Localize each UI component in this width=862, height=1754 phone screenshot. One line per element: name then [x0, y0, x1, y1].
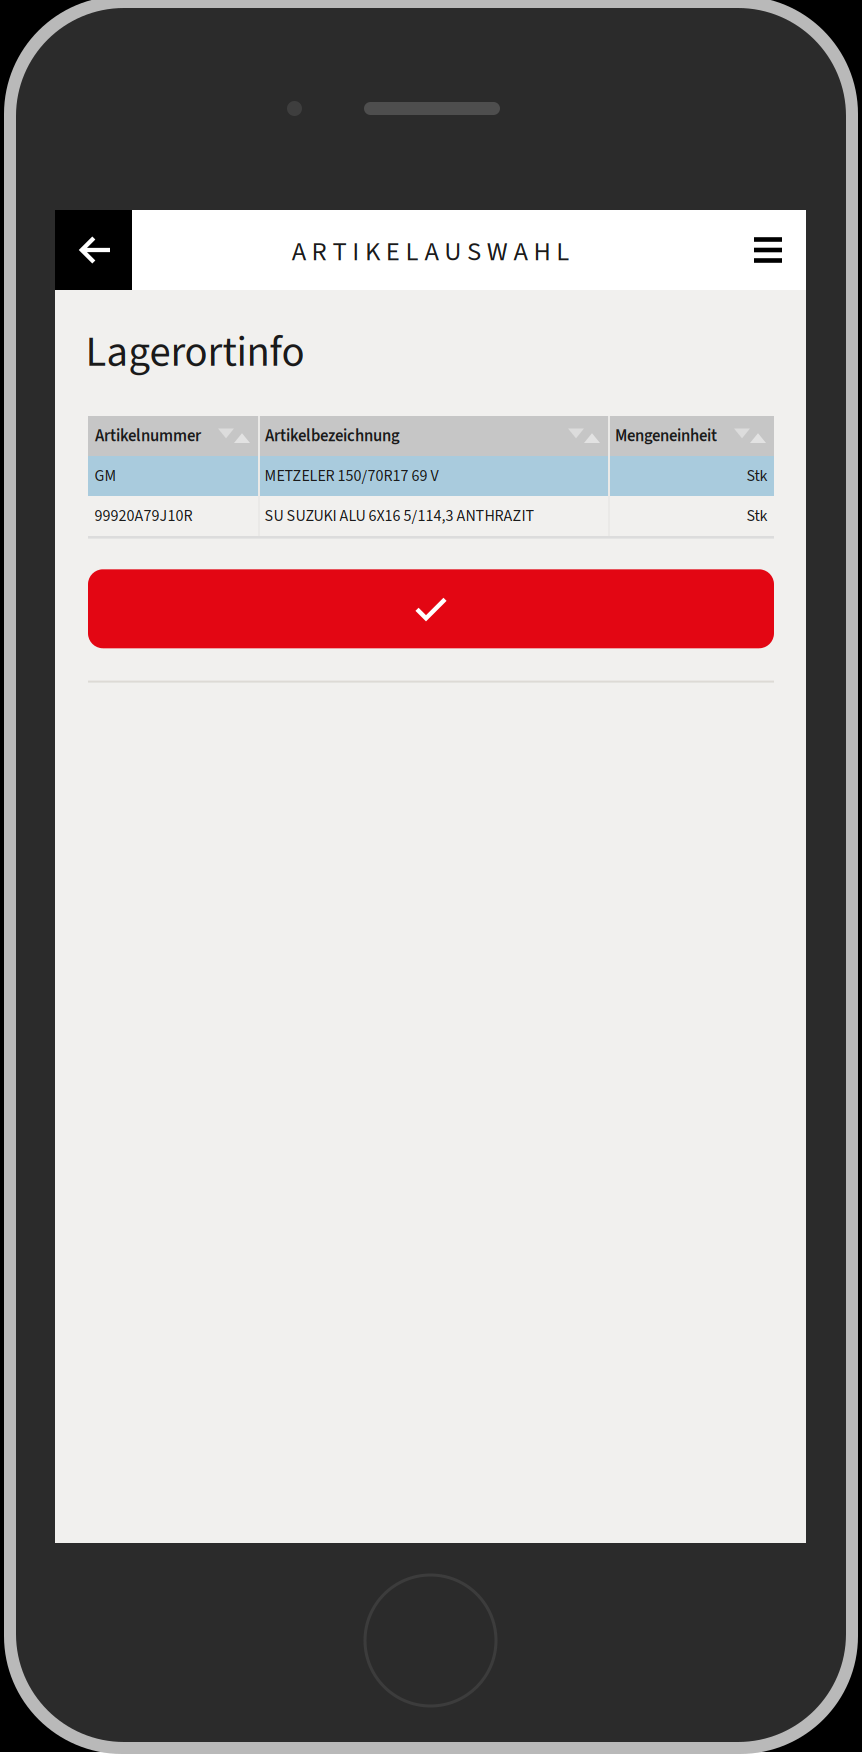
staticText: Stk — [746, 505, 767, 527]
button[interactable]: Confirm selection — [88, 569, 774, 648]
staticText: Lagerortinfo — [85, 322, 304, 383]
staticText: SU SUZUKI ALU 6X16 5/114,3 ANTHRAZIT — [264, 505, 534, 527]
staticText: GM — [94, 465, 116, 487]
button[interactable]: Back — [55, 210, 132, 290]
staticText: 99920A79J10R — [94, 505, 192, 527]
button[interactable]: Menu — [730, 210, 806, 290]
staticText: ARTIKELAUSWAHL — [292, 233, 569, 271]
staticText: METZELER 150/70R17 69 V — [264, 465, 438, 487]
staticText: Mengeneinheit — [615, 424, 717, 448]
staticText: Artikelnummer — [95, 424, 201, 448]
staticText: Artikelbezeichnung — [265, 424, 400, 448]
staticText: Stk — [746, 465, 767, 487]
